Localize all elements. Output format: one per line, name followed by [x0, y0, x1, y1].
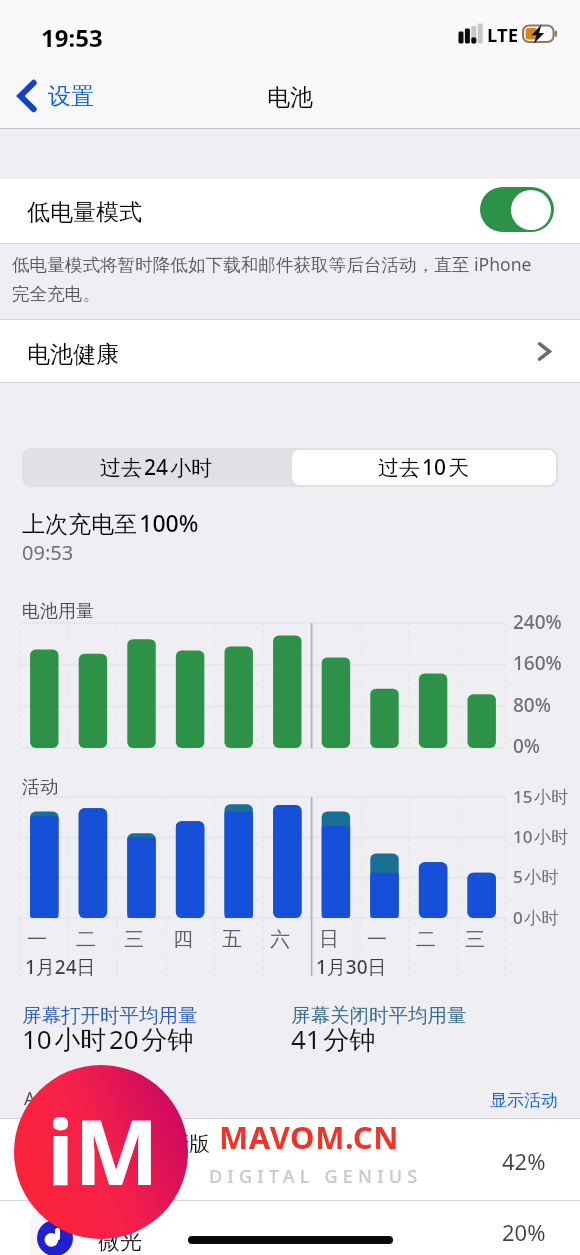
staticText: 240% — [513, 609, 562, 635]
staticText: 低电量模式将暂时降低如下载和邮件获取等后台活动，直至 iPhone 完全充电。 — [12, 252, 580, 306]
staticText: 1月24日 — [25, 954, 96, 980]
staticText: 上次充电至 100% — [22, 507, 199, 538]
staticText: 0 小时 — [513, 906, 559, 929]
staticText: 三 — [465, 927, 485, 952]
staticText: 过去 24 小时 — [100, 453, 213, 482]
button[interactable]: 过去 10 天 — [292, 450, 556, 485]
staticText: 80% — [513, 692, 551, 718]
button[interactable] — [0, 320, 580, 382]
button[interactable]: 设置 — [18, 80, 94, 112]
staticText: App — [24, 1086, 58, 1111]
button[interactable]: 显示活动 — [490, 1090, 558, 1111]
staticText: 160% — [513, 650, 562, 676]
staticText: 10 小时 — [513, 825, 569, 848]
staticText: 过去 10 天 — [378, 453, 470, 482]
staticText: 20% — [502, 1217, 546, 1247]
staticText: LTE — [487, 22, 519, 46]
staticText: 15 小时 — [513, 785, 569, 808]
staticText: DIGITAL GENIUS — [209, 1164, 423, 1189]
staticText: 1月30日 — [316, 954, 387, 980]
staticText: 设置 — [48, 82, 94, 111]
staticText: 一 — [367, 927, 387, 952]
button[interactable] — [0, 179, 580, 243]
staticText: 低电量模式 — [27, 198, 142, 227]
staticText: iM — [47, 1089, 159, 1212]
staticText: 六 — [270, 927, 290, 952]
staticText: 屏幕打开时平均用量 — [22, 1003, 198, 1028]
button[interactable] — [0, 1201, 580, 1255]
staticText: 0% — [513, 733, 541, 759]
staticText: 屏幕关闭时平均用量 — [291, 1003, 467, 1028]
staticText: 二 — [416, 927, 436, 952]
staticText: MAVOM.CN — [219, 1116, 400, 1158]
staticText: 一 — [27, 927, 47, 952]
staticText: 五 — [222, 927, 242, 952]
staticText: 09:53 — [22, 539, 74, 566]
button[interactable]: Low Power Mode toggle — [480, 187, 554, 232]
staticText: 二 — [76, 927, 96, 952]
staticText: 新版 — [168, 1131, 210, 1157]
staticText: 5 小时 — [513, 865, 559, 888]
button[interactable] — [0, 1119, 580, 1200]
staticText: 19:53 — [41, 21, 103, 54]
staticText: 活动 — [22, 776, 58, 799]
staticText: 日 — [319, 927, 339, 952]
staticText: 41 分钟 — [291, 1021, 376, 1057]
staticText: 电池用量 — [22, 600, 94, 623]
button[interactable]: 过去 24 小时 — [22, 448, 290, 487]
staticText: 显示活动 — [490, 1090, 558, 1111]
staticText: 四 — [173, 927, 193, 952]
staticText: 电池 — [267, 83, 313, 112]
staticText: 电池健康 — [27, 340, 119, 369]
staticText: 10 小时 20 分钟 — [22, 1021, 194, 1057]
staticText: 三 — [124, 927, 144, 952]
staticText: 42% — [502, 1146, 546, 1176]
staticText: 微光 — [98, 1228, 142, 1255]
